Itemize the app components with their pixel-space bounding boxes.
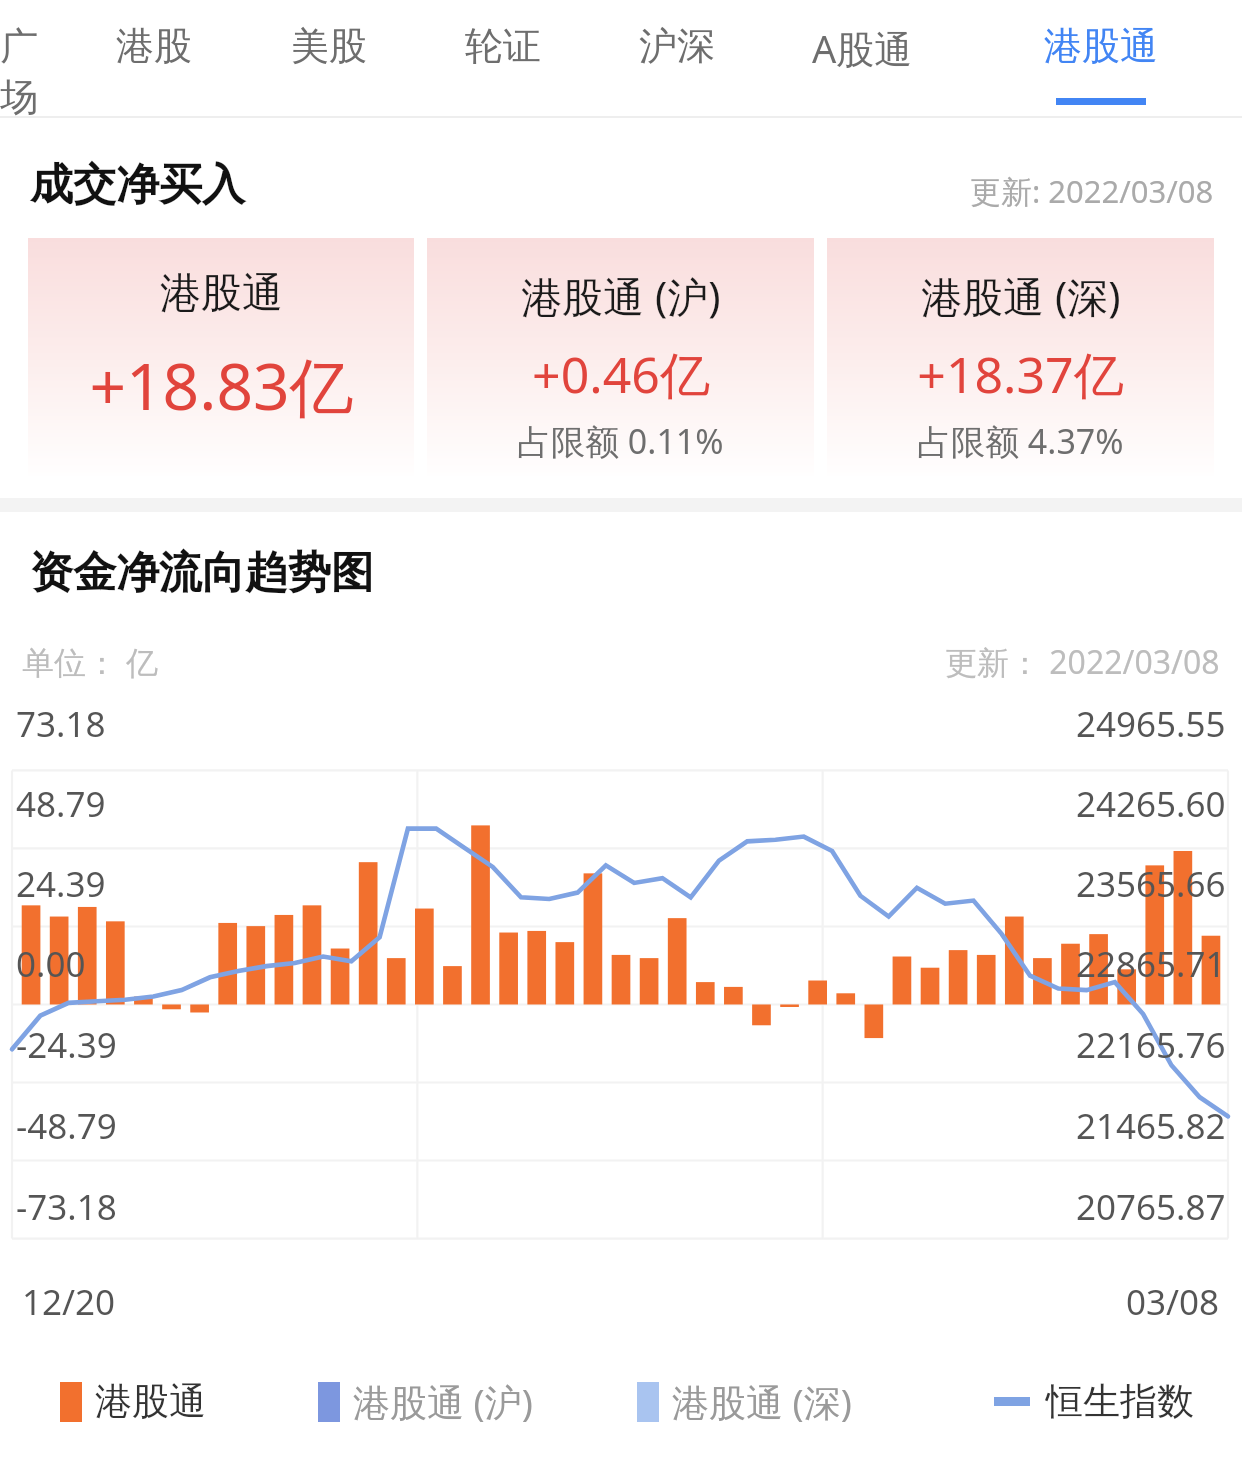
staticText: 24.39 [16,860,106,908]
button[interactable]: 港股通 [960,0,1242,118]
staticText: 0.00 [16,940,86,988]
staticText: 21465.82 [1076,1102,1226,1150]
staticText: 成交净买入 [30,158,245,212]
staticText: -48.79 [16,1102,117,1150]
button[interactable]: 美股 [242,0,416,118]
staticText: -24.39 [16,1021,117,1069]
staticText: 港股通 [1044,22,1158,70]
staticText: 港股通 (沪) [521,268,721,324]
staticText: 港股 [116,22,192,70]
staticText: 24265.60 [1076,780,1226,828]
staticText: -73.18 [16,1183,117,1231]
staticText: 港股通 [95,1378,206,1425]
button[interactable]: 港股 [66,0,242,118]
staticText: 更新: 2022/03/08 [970,170,1214,212]
staticText: 广场 [0,22,66,118]
staticText: 03/08 [1126,1278,1220,1326]
button[interactable]: 港股通 (沪) [318,1376,533,1427]
button[interactable]: 轮证 [416,0,590,118]
staticText: 沪深 [639,22,715,70]
staticText: 单位： 亿 [22,640,159,684]
staticText: 占限额 0.11% [517,418,724,464]
staticText: 12/20 [22,1278,116,1326]
button[interactable]: 港股通 (深) [637,1376,852,1427]
button[interactable]: 沪深 [590,0,764,118]
button[interactable]: 港股通 [60,1378,206,1425]
button[interactable]: A股通 [764,0,960,118]
staticText: 恒生指数 [1046,1378,1194,1425]
staticText: 22165.76 [1076,1021,1226,1069]
button[interactable]: 港股通 [28,238,414,476]
staticText: 22865.71 [1076,940,1226,988]
staticText: 港股通 [160,268,283,320]
staticText: 资金净流向趋势图 [30,546,374,600]
staticText: 港股通 (深) [672,1376,852,1427]
staticText: +18.83亿 [89,342,354,429]
staticText: 更新： 2022/03/08 [945,640,1220,684]
button[interactable]: 恒生指数 [994,1378,1194,1425]
staticText: 港股通 (深) [921,268,1121,324]
staticText: 73.18 [16,700,106,748]
staticText: +18.37亿 [917,340,1124,408]
button[interactable]: 港股通 (深) [827,238,1214,476]
staticText: +0.46亿 [532,340,710,408]
button[interactable]: 广场 [0,0,66,118]
staticText: A股通 [812,22,913,74]
staticText: 港股通 (沪) [353,1376,533,1427]
staticText: 20765.87 [1076,1183,1226,1231]
staticText: 23565.66 [1076,860,1226,908]
staticText: 48.79 [16,780,106,828]
staticText: 轮证 [465,22,541,70]
staticText: 占限额 4.37% [917,418,1124,464]
staticText: 24965.55 [1076,700,1226,748]
button[interactable]: 港股通 (沪) [427,238,814,476]
staticText: 美股 [291,22,367,70]
